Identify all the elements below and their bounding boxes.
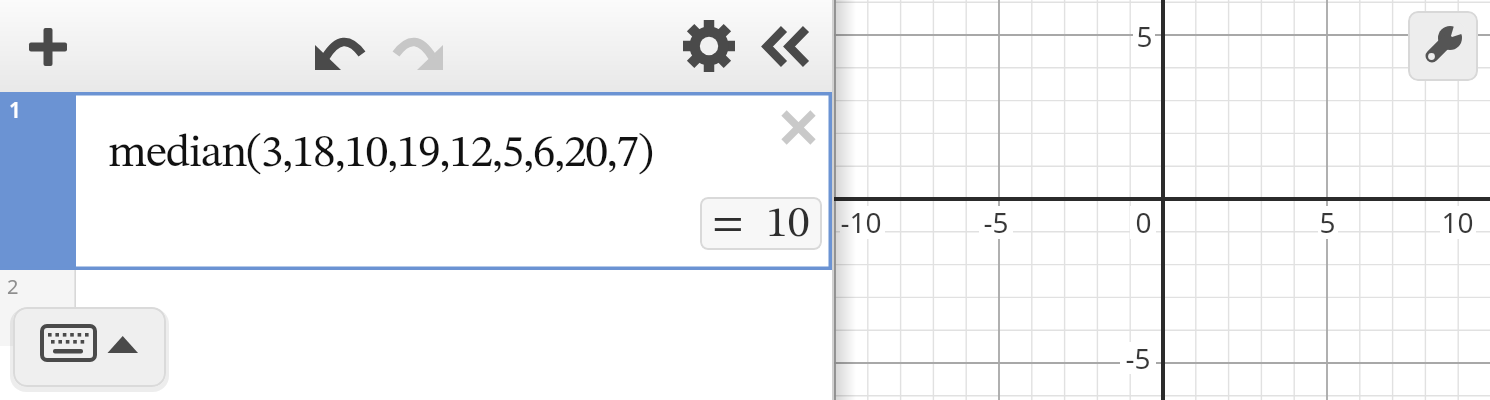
staticText: 5 xyxy=(1319,203,1336,241)
button[interactable] xyxy=(681,18,737,74)
staticText: 2 xyxy=(7,273,19,300)
staticText: 10 xyxy=(1441,203,1474,241)
staticText: 10 xyxy=(766,202,810,246)
staticText: 0 xyxy=(1135,203,1152,241)
staticText: -5 xyxy=(1125,339,1151,377)
button[interactable] xyxy=(308,22,370,78)
staticText: median(3,18,10,19,12,5,6,20,7) xyxy=(108,131,653,177)
staticText: -5 xyxy=(983,203,1009,241)
button[interactable] xyxy=(13,307,166,387)
button[interactable] xyxy=(388,22,450,78)
staticText: -10 xyxy=(840,203,882,241)
button[interactable]: median(3,18,10,19,12,5,6,20,7) xyxy=(0,95,829,267)
button[interactable] xyxy=(757,20,813,72)
staticText: 1 xyxy=(9,96,22,125)
button[interactable] xyxy=(22,21,74,73)
button[interactable] xyxy=(1408,11,1478,81)
button[interactable] xyxy=(772,101,824,153)
staticText: 5 xyxy=(1136,17,1153,55)
staticText: = xyxy=(712,202,744,246)
